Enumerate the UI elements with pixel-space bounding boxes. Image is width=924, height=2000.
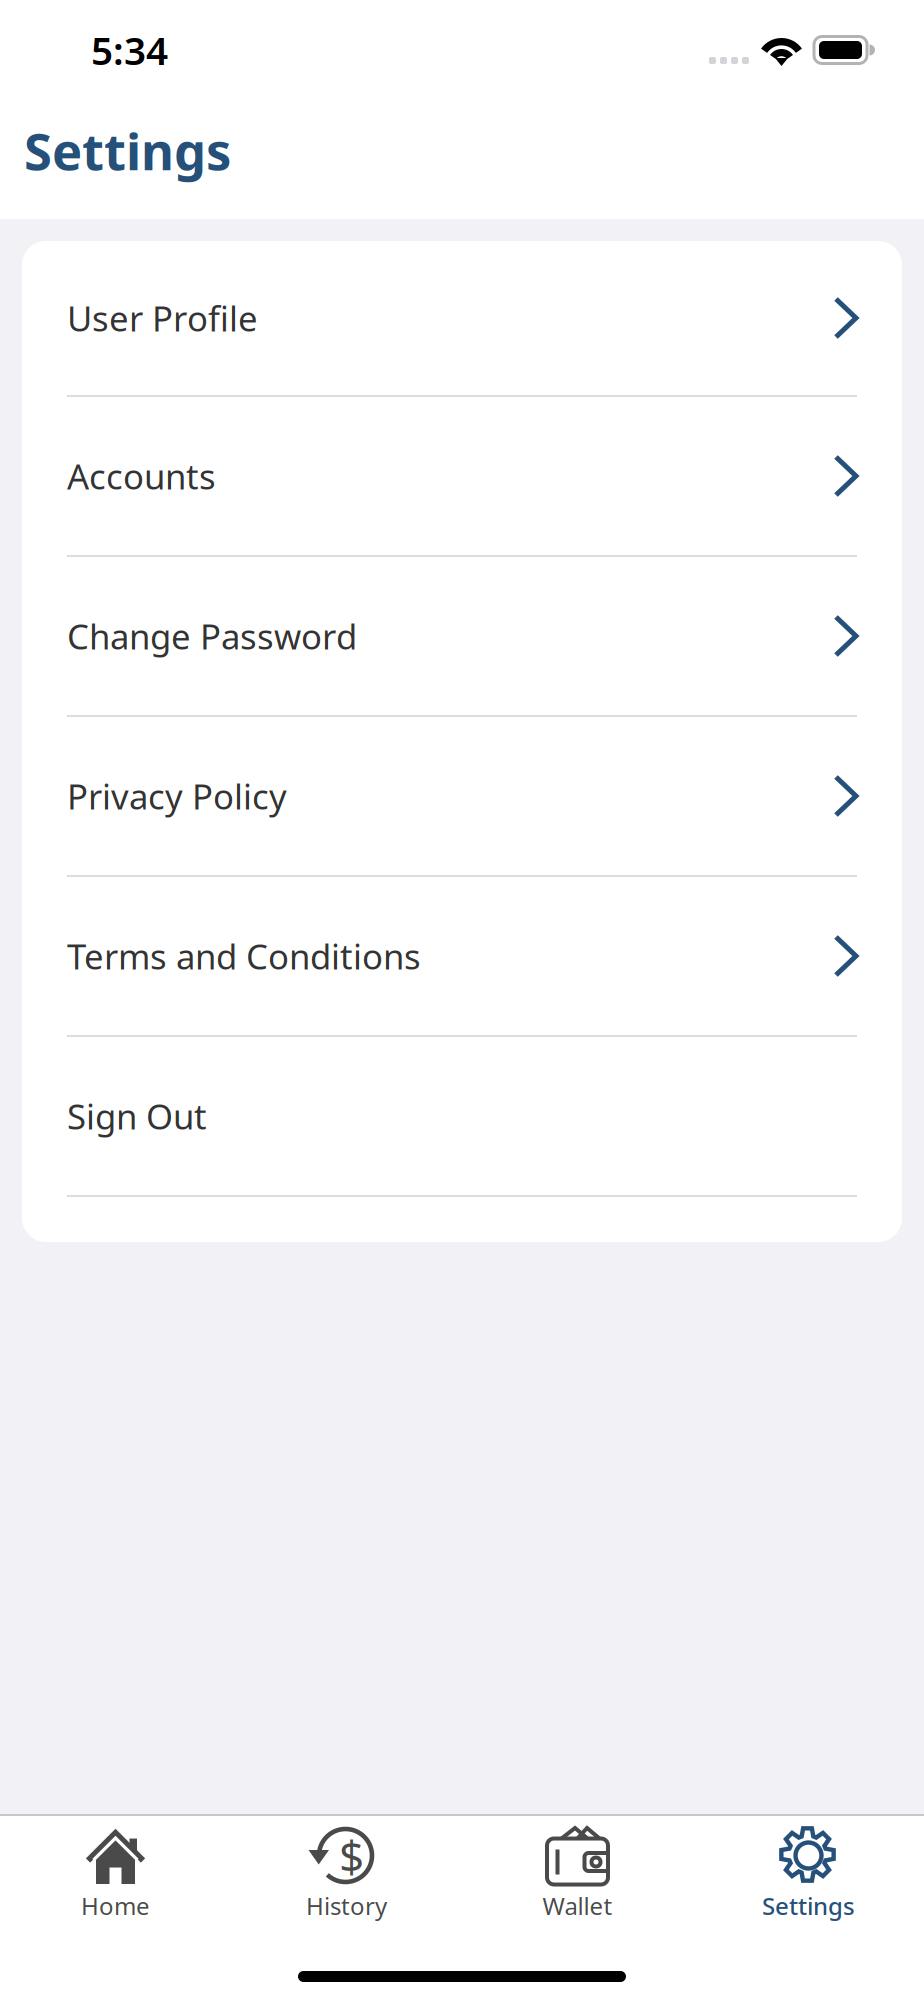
staticText: Settings bbox=[762, 1890, 855, 1921]
staticText: Sign Out bbox=[67, 1093, 207, 1139]
button[interactable]: Accounts bbox=[22, 397, 902, 557]
staticText: Terms and Conditions bbox=[67, 933, 421, 979]
staticText: Privacy Policy bbox=[67, 773, 287, 819]
button[interactable]: Change Password bbox=[22, 557, 902, 717]
button[interactable]: User Profile bbox=[22, 241, 902, 397]
staticText: Change Password bbox=[67, 613, 357, 659]
staticText: Accounts bbox=[67, 453, 216, 499]
staticText: Home bbox=[81, 1890, 150, 1921]
button[interactable]: Privacy Policy bbox=[22, 717, 902, 877]
button[interactable]: Settings bbox=[693, 1805, 924, 1931]
button[interactable]: Terms and Conditions bbox=[22, 877, 902, 1037]
button[interactable]: Wallet bbox=[462, 1805, 693, 1931]
staticText: History bbox=[306, 1890, 387, 1921]
button[interactable]: Home bbox=[0, 1805, 231, 1931]
button[interactable]: $ bbox=[231, 1805, 462, 1931]
staticText: Settings bbox=[24, 117, 231, 184]
staticText: Wallet bbox=[542, 1890, 612, 1921]
staticText: User Profile bbox=[67, 295, 258, 341]
staticText: $ bbox=[339, 1826, 364, 1885]
button[interactable]: Sign Out bbox=[22, 1037, 902, 1197]
staticText: 5:34 bbox=[91, 24, 168, 76]
